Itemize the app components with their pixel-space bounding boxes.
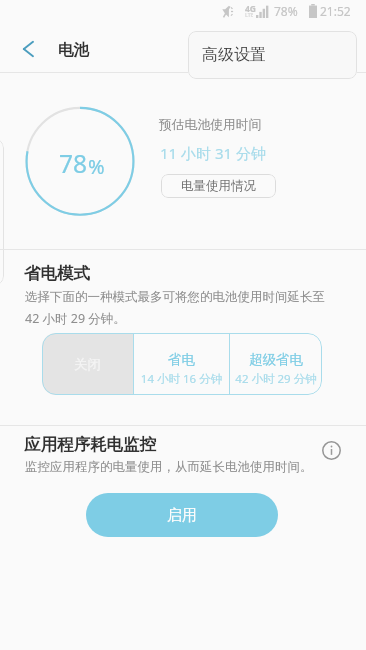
button[interactable]: 高级设置 <box>188 31 357 79</box>
staticText: 关闭 <box>74 356 101 373</box>
button[interactable]: 超级省电 <box>230 333 322 395</box>
button[interactable]: Back <box>6 31 50 67</box>
staticText: 选择下面的一种模式最多可将您的电池使用时间延长至 42 小时 29 分钟。 <box>25 288 341 327</box>
staticText: 11 小时 31 分钟 <box>160 143 267 163</box>
staticText: 78% <box>274 3 298 19</box>
staticText: 42 小时 29 分钟 <box>230 371 322 387</box>
button[interactable]: Info <box>317 436 345 464</box>
staticText: % <box>88 153 105 180</box>
staticText: 监控应用程序的电量使用，从而延长电池使用时间。 <box>25 459 313 475</box>
staticText: 电池 <box>58 40 89 60</box>
button[interactable]: 电量使用情况 <box>161 174 276 198</box>
button[interactable]: 启用 <box>86 493 278 537</box>
staticText: 高级设置 <box>202 45 266 65</box>
staticText: 78 <box>59 147 88 180</box>
staticText: 电量使用情况 <box>181 178 256 194</box>
staticText: 省电 <box>134 351 229 368</box>
staticText: 应用程序耗电监控 <box>24 434 156 455</box>
button[interactable]: 关闭 <box>42 333 133 395</box>
staticText: 21:52 <box>320 3 351 19</box>
staticText: 14 小时 16 分钟 <box>134 371 229 387</box>
staticText: 4G <box>245 3 257 15</box>
staticText: 省电模式 <box>24 263 90 284</box>
staticText: LTE <box>245 12 254 19</box>
staticText: 超级省电 <box>230 351 322 368</box>
button[interactable]: 省电 <box>134 333 229 395</box>
staticText: 预估电池使用时间 <box>159 117 262 133</box>
staticText: 启用 <box>167 506 197 525</box>
